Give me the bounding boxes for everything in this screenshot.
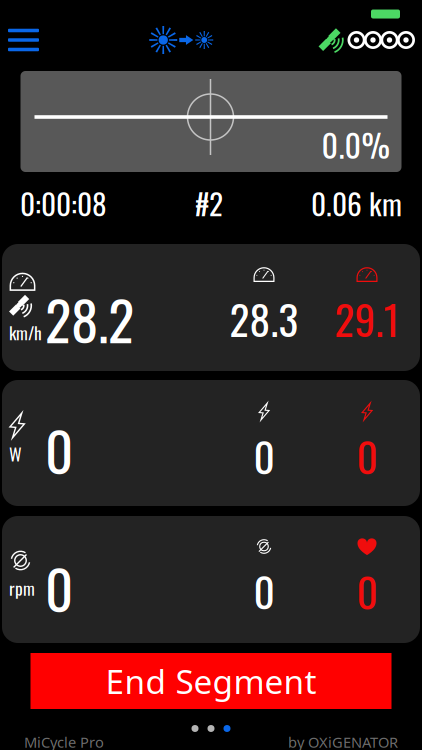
staticText: 0 — [45, 409, 73, 490]
button[interactable]: Menu — [3, 22, 44, 57]
staticText: 0:00:08 — [20, 181, 107, 225]
staticText: #2 — [195, 181, 223, 225]
staticText: 0 — [356, 425, 377, 486]
button[interactable]: Brightness — [149, 22, 213, 58]
staticText: 0 — [253, 560, 274, 621]
staticText: End Segment — [105, 659, 316, 703]
staticText: 0.0% — [321, 121, 390, 168]
staticText: 29.1 — [334, 288, 399, 349]
staticText: MiCycle Pro — [24, 732, 104, 750]
staticText: 0 — [253, 425, 274, 486]
button[interactable]: End Segment — [30, 653, 391, 709]
staticText: rpm — [9, 575, 35, 601]
staticText: 28.2 — [45, 278, 134, 359]
staticText: km/h — [9, 320, 42, 345]
staticText: by OXiGENATOR — [288, 732, 398, 750]
staticText: 0 — [45, 547, 73, 628]
staticText: 0 — [356, 560, 377, 621]
staticText: W — [9, 441, 22, 466]
staticText: 0.06 km — [311, 181, 402, 225]
staticText: 28.3 — [229, 288, 298, 349]
